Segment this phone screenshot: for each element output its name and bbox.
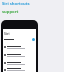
staticText: Siri	[4, 31, 10, 36]
button[interactable]	[3, 51, 36, 59]
button[interactable]: Add	[32, 38, 35, 41]
button[interactable]	[3, 43, 36, 51]
button[interactable]	[3, 67, 36, 72]
button[interactable]	[3, 59, 36, 67]
staticText: Siri shortcuts	[2, 1, 30, 7]
staticText: support	[2, 9, 19, 15]
